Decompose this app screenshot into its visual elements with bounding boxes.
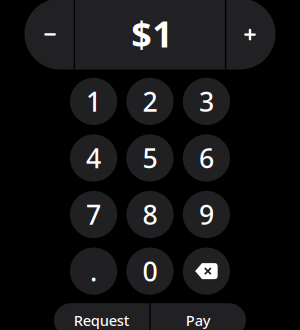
staticText: 9: [199, 197, 214, 232]
button[interactable]: Decrease amount: [24, 0, 74, 69]
staticText: 0: [142, 253, 157, 289]
button[interactable]: 1: [70, 78, 117, 125]
staticText: 1: [86, 84, 101, 119]
button[interactable]: 8: [126, 191, 174, 238]
staticText: 6: [199, 140, 214, 176]
button[interactable]: 7: [70, 191, 117, 238]
button[interactable]: 9: [183, 191, 230, 238]
staticText: 5: [142, 140, 157, 176]
button[interactable]: 0: [126, 247, 174, 295]
button[interactable]: Request: [54, 303, 149, 330]
button[interactable]: 4: [70, 134, 117, 182]
button[interactable]: .: [70, 247, 117, 295]
staticText: 3: [199, 84, 214, 119]
staticText: $1: [131, 10, 173, 57]
button[interactable]: Increase amount: [226, 0, 275, 69]
staticText: 8: [142, 197, 157, 232]
button[interactable]: 5: [126, 134, 174, 182]
staticText: .: [90, 253, 97, 289]
button[interactable]: Pay: [151, 303, 246, 330]
staticText: Pay: [186, 310, 211, 330]
staticText: 2: [142, 84, 157, 119]
button[interactable]: 2: [126, 78, 174, 125]
button[interactable]: Delete: [183, 247, 230, 295]
button[interactable]: 3: [183, 78, 230, 125]
staticText: 7: [86, 197, 101, 232]
button[interactable]: 6: [183, 134, 230, 182]
staticText: Request: [74, 310, 130, 330]
staticText: 4: [86, 140, 101, 176]
